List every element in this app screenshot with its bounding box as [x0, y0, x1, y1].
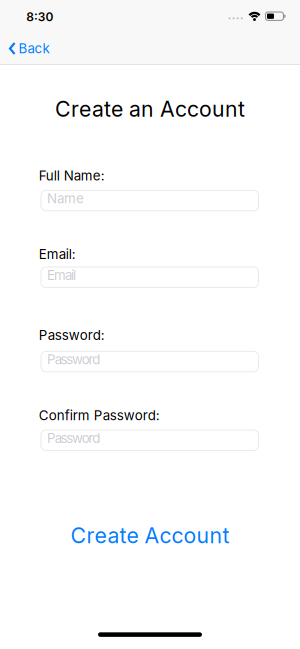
staticText: Password — [47, 351, 100, 367]
staticText: Create an Account — [55, 96, 245, 122]
button[interactable]: Create Account — [0, 515, 300, 555]
button[interactable]: Back — [0, 35, 50, 61]
staticText: Email — [47, 267, 76, 283]
staticText: Password: — [39, 327, 105, 343]
staticText: Create Account — [70, 523, 229, 548]
staticText: Confirm Password: — [39, 407, 160, 423]
staticText: Name — [47, 190, 84, 206]
staticText: Back — [19, 41, 50, 56]
staticText: 8:30 — [26, 10, 53, 24]
staticText: Full Name: — [39, 168, 105, 183]
staticText: Email: — [39, 246, 76, 262]
staticText: Password — [47, 430, 100, 446]
